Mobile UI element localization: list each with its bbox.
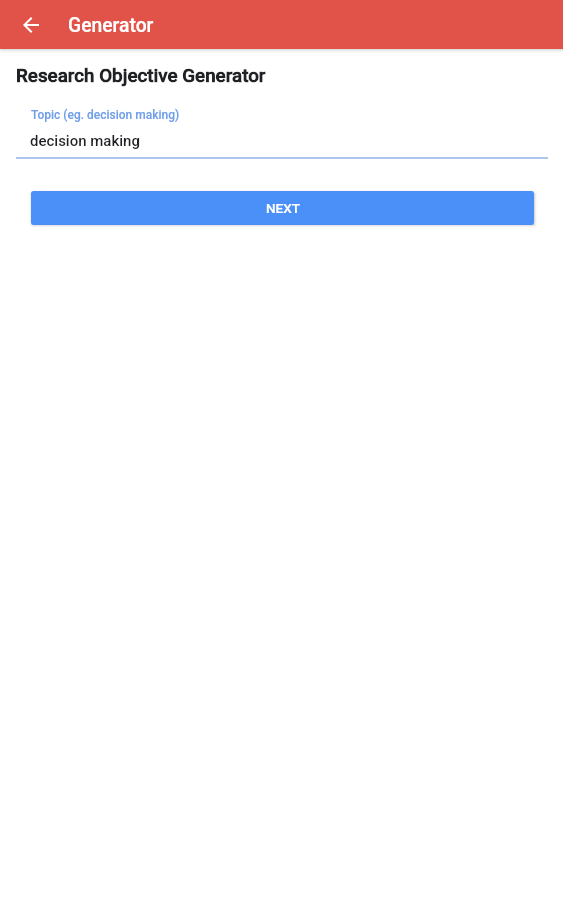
staticText: Research Objective Generator — [16, 65, 266, 87]
button[interactable]: Topic input field — [16, 96, 548, 159]
staticText: decision making — [30, 132, 140, 150]
staticText: NEXT — [266, 200, 300, 216]
staticText: Topic (eg. decision making) — [31, 108, 180, 122]
staticText: Generator — [68, 14, 154, 37]
button[interactable]: Navigate up — [13, 7, 49, 43]
button[interactable]: NEXT — [31, 191, 534, 225]
